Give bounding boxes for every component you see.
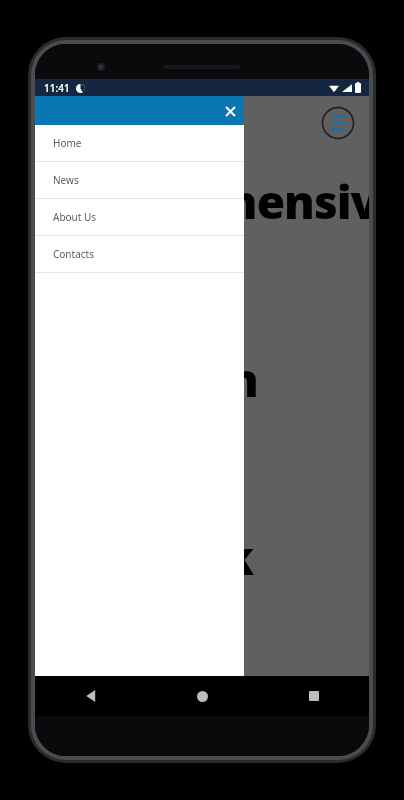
staticText: Network — [49, 526, 254, 589]
staticText: News — [53, 173, 79, 187]
staticText: Research — [49, 348, 258, 411]
button[interactable]: News — [35, 162, 244, 198]
button[interactable]: Close menu — [216, 97, 244, 125]
button[interactable]: Recent apps — [258, 676, 369, 716]
button[interactable]: About Us — [35, 199, 244, 235]
staticText: About Us — [53, 210, 97, 224]
button[interactable]: Home — [35, 125, 244, 161]
button[interactable]: Contacts — [35, 236, 244, 272]
staticText: Home — [53, 136, 82, 150]
button[interactable]: Home — [147, 676, 258, 716]
staticText: Comprehensive — [49, 170, 369, 233]
staticText: Private — [49, 259, 214, 322]
button[interactable]: Open navigation menu — [321, 106, 355, 140]
button[interactable]: Back — [35, 676, 147, 716]
staticText: Contacts — [53, 247, 94, 261]
staticText: 11:41 — [44, 81, 70, 95]
